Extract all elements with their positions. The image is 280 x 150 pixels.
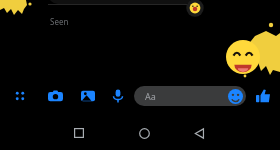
staticText: Aa — [145, 90, 156, 102]
button[interactable]: Home — [133, 122, 155, 144]
button[interactable]: Send like — [252, 85, 274, 107]
button[interactable]: Voice message — [107, 85, 129, 107]
button[interactable]: More actions — [9, 85, 31, 107]
button[interactable]: Aa — [134, 86, 246, 106]
button[interactable]: Emoji — [228, 89, 243, 104]
staticText: Seen — [50, 16, 69, 27]
button[interactable]: Back — [188, 122, 210, 144]
button[interactable]: Recent apps — [68, 122, 90, 144]
button[interactable]: Camera — [44, 85, 66, 107]
button[interactable]: Gallery — [77, 85, 99, 107]
